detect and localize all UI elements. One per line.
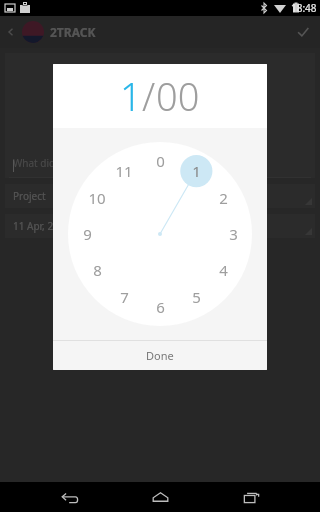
button[interactable]: 4 [209,256,237,284]
staticText: What did you [13,156,76,170]
button[interactable]: Back [0,16,22,48]
button[interactable]: 7 [110,283,138,311]
staticText: 2 [219,188,228,208]
staticText: 5 [192,287,201,307]
button[interactable]: Home [138,482,182,512]
button[interactable]: 6 [146,293,174,321]
staticText: 8 [93,260,102,280]
button[interactable]: Done [53,341,267,370]
staticText: 11 [115,161,133,181]
button[interactable]: 10 [83,184,111,212]
staticText: 10 [88,188,106,208]
staticText: 1 [192,161,201,181]
button[interactable]: 1 [182,157,210,185]
button[interactable]: 2 [209,184,237,212]
staticText: 2TRACK [50,24,96,40]
button[interactable]: 9 [73,220,101,248]
button[interactable]: 1 [120,70,142,122]
staticText: 1 [120,70,142,122]
button[interactable]: 00 [156,70,200,122]
button[interactable]: 5 [182,283,210,311]
staticText: 3 [229,224,238,244]
button[interactable]: Back [47,482,91,512]
button[interactable]: What did you [5,53,315,178]
button[interactable]: Recent apps [229,482,273,512]
staticText: 00 [156,70,200,122]
button[interactable]: Project [5,184,315,208]
staticText: 9 [83,224,92,244]
staticText: 18:48 [291,1,317,15]
button[interactable]: 11 [110,157,138,185]
staticText: 6 [156,297,165,317]
button[interactable]: 0 [146,147,174,175]
button[interactable]: 8 [83,256,111,284]
button[interactable]: Save [286,16,320,48]
button[interactable]: 11 Apr, 2014 [5,214,315,238]
button[interactable]: 3 [219,220,247,248]
staticText: 7 [120,287,129,307]
staticText: Project [13,189,46,203]
staticText: 11 Apr, 2014 [13,219,71,233]
staticText: 0 [156,151,165,171]
staticText: / [142,70,156,122]
staticText: 4 [219,260,228,280]
staticText: Done [146,348,174,363]
